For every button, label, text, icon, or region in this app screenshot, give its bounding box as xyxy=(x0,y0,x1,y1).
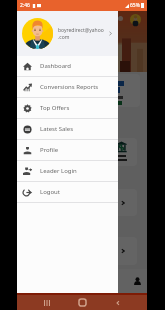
staticText: Conversions Reports xyxy=(40,83,99,91)
staticText: Profile xyxy=(40,146,59,154)
button[interactable]: Latest Sales xyxy=(17,119,118,139)
staticText: Latest Sales xyxy=(40,125,74,133)
staticText: .com xyxy=(58,34,70,41)
staticText: boyredirect@yahoo xyxy=(58,27,104,34)
staticText: 2:46 xyxy=(20,2,30,9)
staticText: Logout xyxy=(40,188,60,196)
button[interactable]: Back xyxy=(111,296,124,309)
button[interactable]: Top Offers xyxy=(17,98,118,118)
button[interactable]: Home xyxy=(76,296,89,309)
staticText: Dashboard xyxy=(40,62,72,70)
staticText: 65% xyxy=(130,2,140,9)
button[interactable]: Conversions Reports xyxy=(17,77,118,97)
button[interactable]: Profile xyxy=(17,140,118,160)
staticText: Top Offers xyxy=(40,104,70,112)
button[interactable]: Leader Login xyxy=(17,161,118,181)
button[interactable]: Logout xyxy=(17,182,118,202)
button[interactable]: Dashboard xyxy=(17,56,118,76)
staticText: Leader Login xyxy=(40,167,77,175)
button[interactable]: Recent apps xyxy=(40,296,53,309)
